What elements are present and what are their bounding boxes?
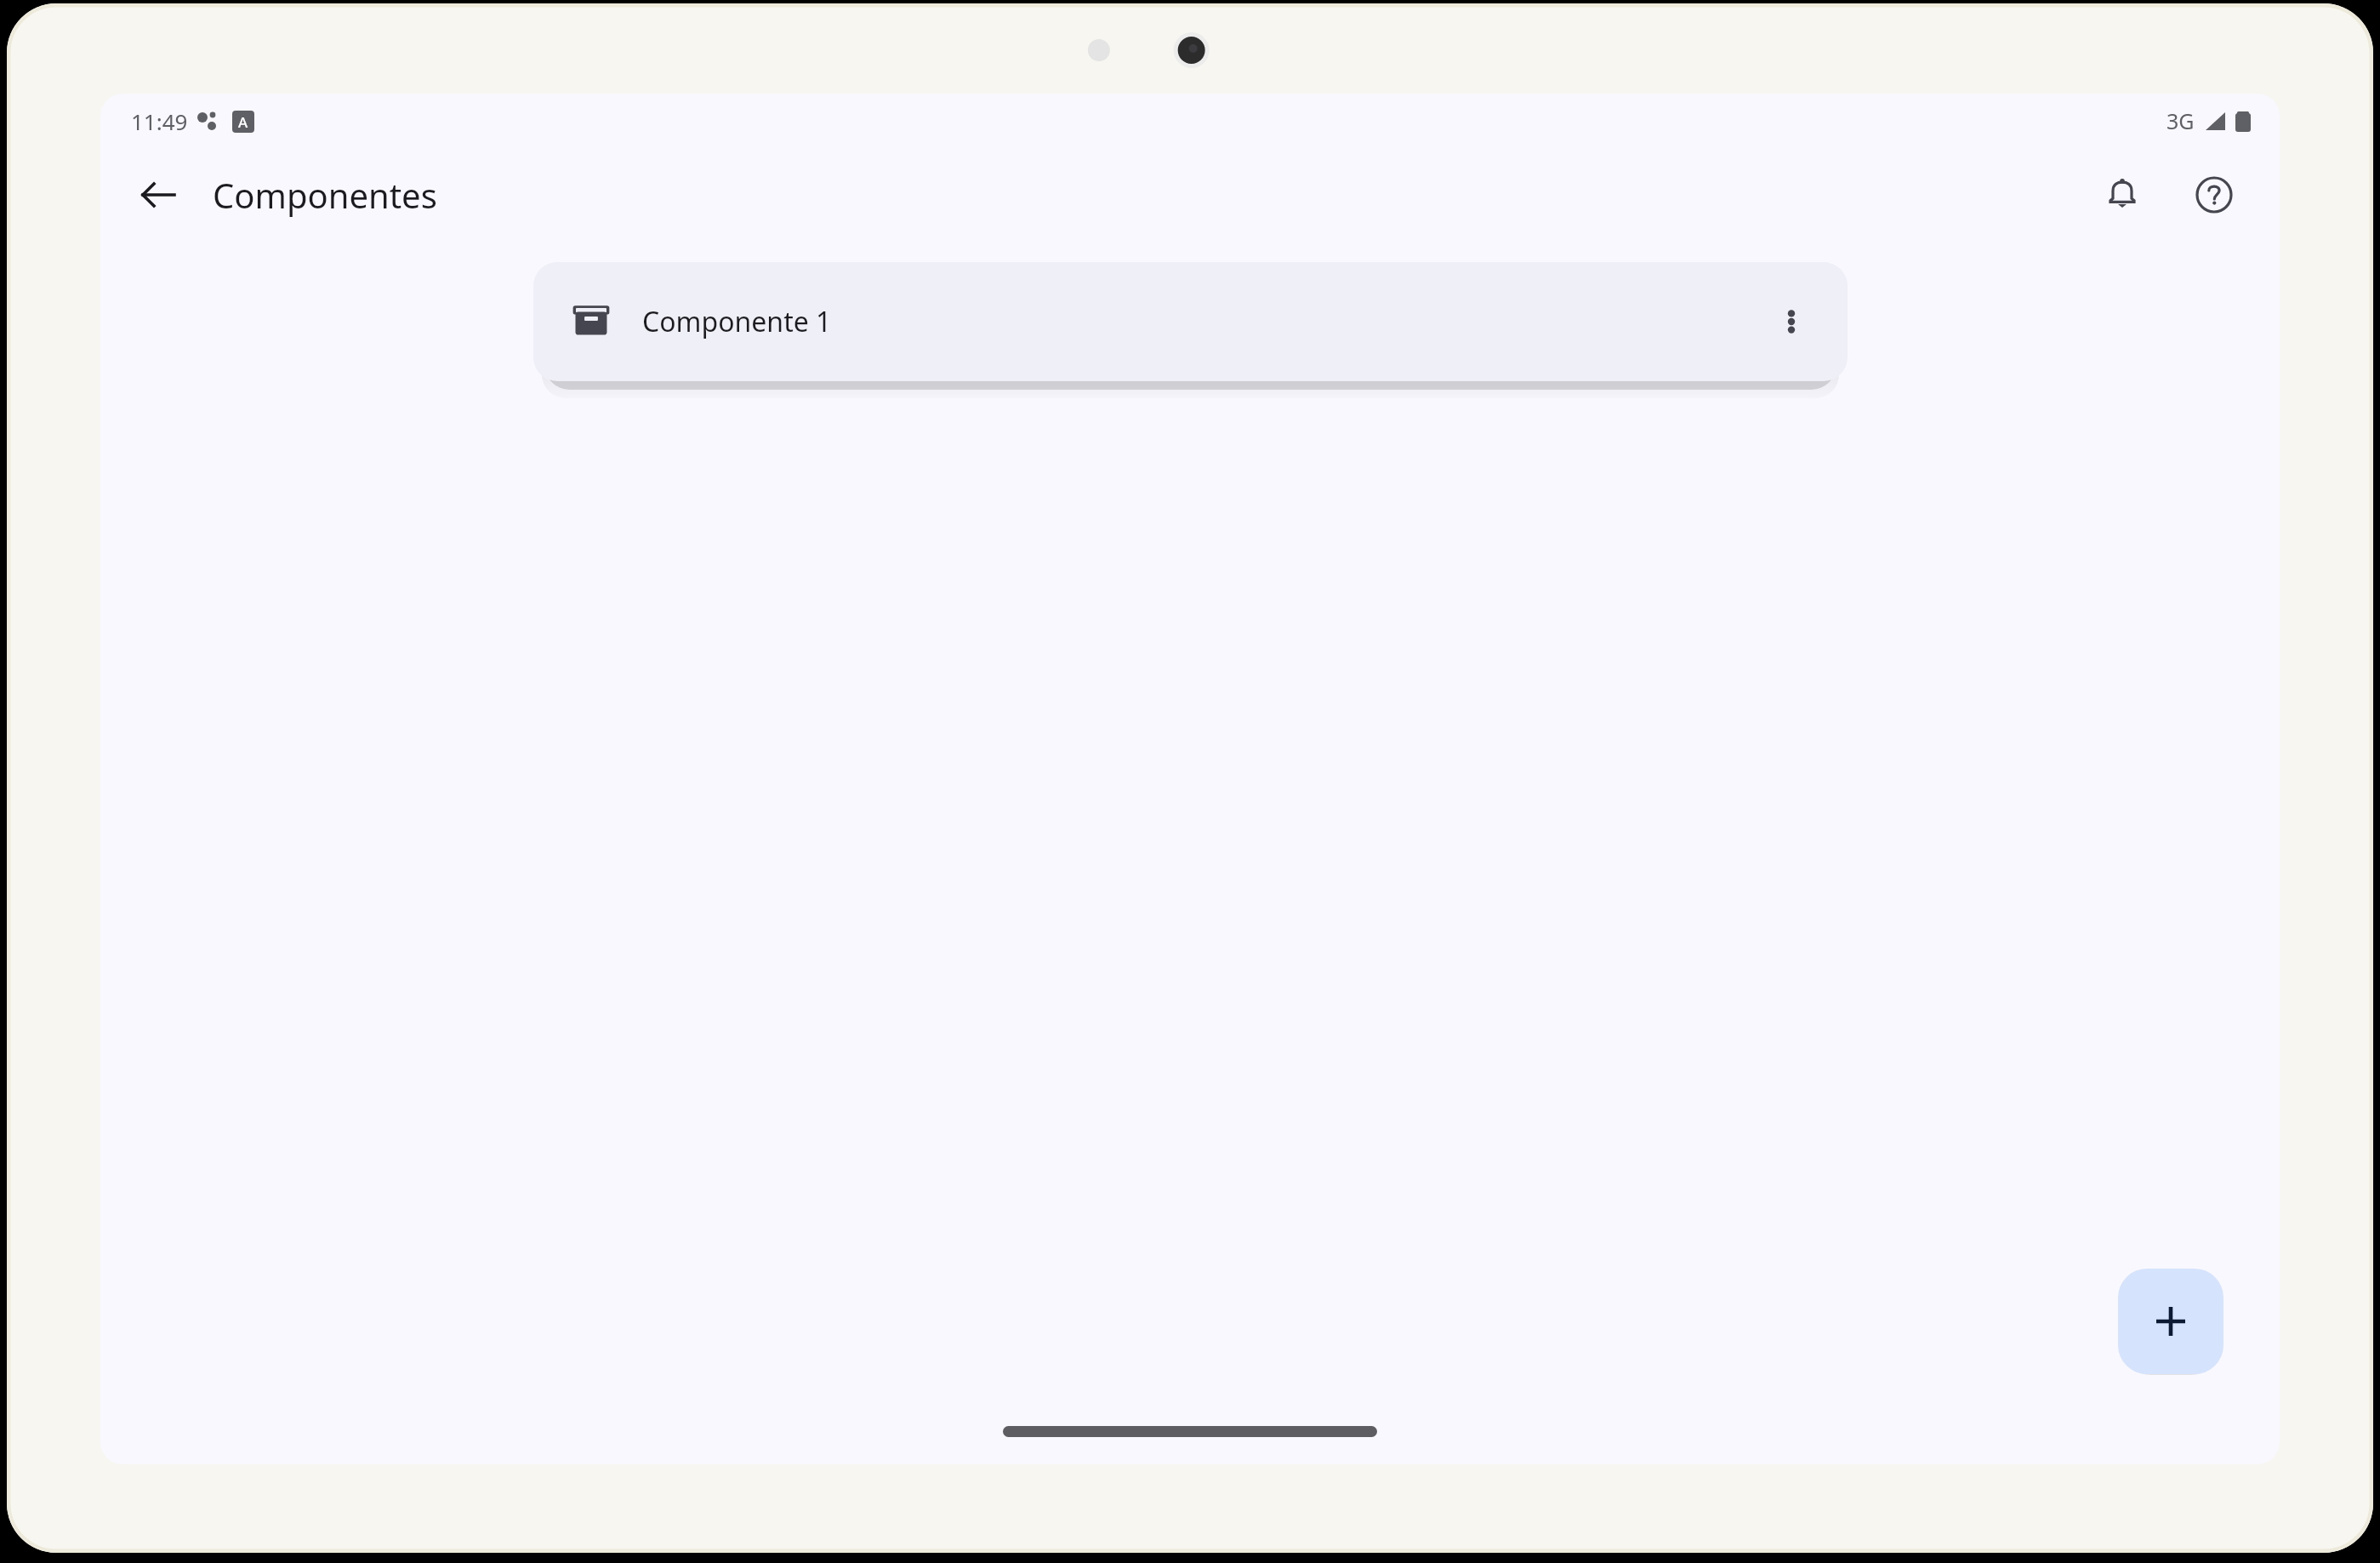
staticText: 11:49 xyxy=(131,106,188,136)
staticText: Componente 1 xyxy=(642,303,832,340)
button[interactable]: Help xyxy=(2178,158,2251,231)
button[interactable]: Notifications xyxy=(2086,158,2159,231)
button[interactable]: More options xyxy=(1754,284,1829,359)
button[interactable]: Home gesture handle xyxy=(1003,1426,1377,1437)
button[interactable]: Componente 1 xyxy=(533,262,1848,381)
button[interactable]: Back xyxy=(124,161,192,229)
button[interactable]: Add xyxy=(2118,1269,2223,1374)
staticText: 3G xyxy=(2166,106,2195,135)
staticText: A xyxy=(238,112,248,132)
staticText: Componentes xyxy=(213,172,437,218)
